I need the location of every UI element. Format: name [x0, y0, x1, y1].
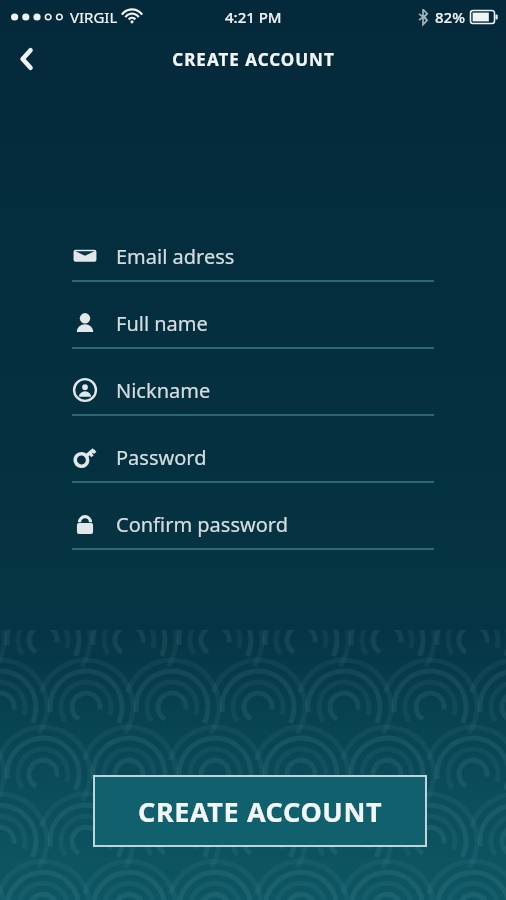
staticText: Email adress [116, 243, 235, 270]
staticText: Password [116, 444, 207, 471]
button[interactable]: Nickname [72, 368, 434, 435]
staticText: Confirm password [116, 511, 288, 538]
button[interactable]: Password [72, 435, 434, 502]
staticText: VIRGIL [70, 7, 118, 27]
staticText: Full name [116, 310, 208, 337]
button[interactable]: Email adress [72, 234, 434, 301]
button[interactable]: CREATE ACCOUNT [93, 775, 427, 847]
button[interactable]: Confirm password [72, 502, 434, 569]
button[interactable]: Full name [72, 301, 434, 368]
staticText: CREATE ACCOUNT [172, 48, 335, 71]
button[interactable]: Back [0, 34, 54, 84]
staticText: 4:21 PM [225, 7, 282, 27]
staticText: CREATE ACCOUNT [138, 793, 383, 830]
staticText: Nickname [116, 377, 211, 404]
staticText: 82% [435, 7, 465, 27]
